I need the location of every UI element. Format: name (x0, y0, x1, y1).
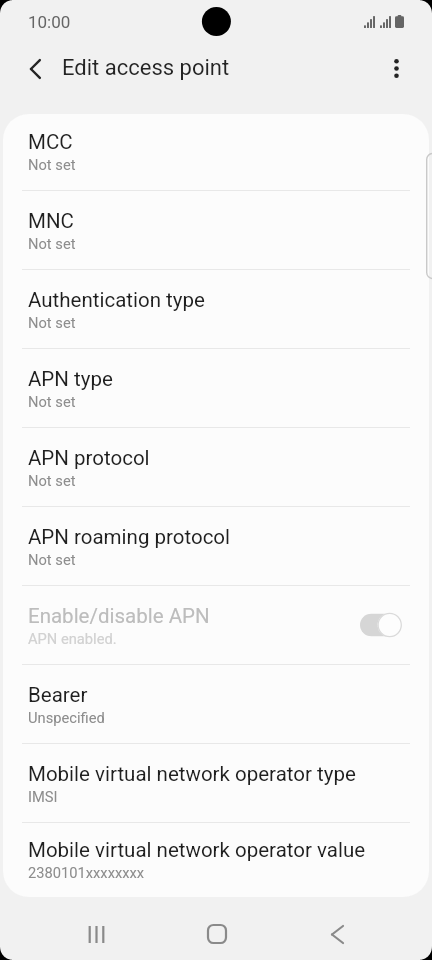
button[interactable]: Mobile virtual network operator value (3, 823, 429, 895)
staticText: APN type (28, 367, 113, 391)
button[interactable]: More options (374, 46, 418, 90)
staticText: APN enabled. (28, 630, 117, 647)
staticText: MNC (28, 209, 74, 233)
button[interactable]: MCC (3, 114, 429, 190)
button[interactable]: Authentication type (3, 270, 429, 348)
staticText: 10:00 (28, 12, 71, 32)
staticText: MCC (28, 130, 73, 154)
staticText: Not set (28, 235, 76, 252)
button[interactable]: Back (309, 906, 365, 960)
button[interactable]: MNC (3, 191, 429, 269)
button[interactable]: APN type (3, 349, 429, 427)
button[interactable]: Bearer (3, 665, 429, 743)
staticText: Bearer (28, 683, 88, 707)
staticText: Enable/disable APN (28, 604, 210, 628)
staticText: APN roaming protocol (28, 525, 231, 549)
staticText: Mobile virtual network operator type (28, 762, 356, 786)
button[interactable]: Mobile virtual network operator type (3, 744, 429, 822)
staticText: Not set (28, 156, 76, 173)
staticText: IMSI (28, 788, 58, 805)
staticText: 2380101xxxxxxxx (28, 864, 145, 881)
staticText: Not set (28, 314, 76, 331)
button[interactable]: APN protocol (3, 428, 429, 506)
button[interactable]: Navigate up (14, 47, 58, 91)
staticText: Edit access point (62, 55, 230, 81)
staticText: Unspecified (28, 709, 105, 726)
staticText: Mobile virtual network operator value (28, 838, 366, 862)
staticText: APN protocol (28, 446, 150, 470)
button[interactable]: Home (189, 906, 245, 960)
staticText: Not set (28, 472, 76, 489)
button[interactable]: Recent apps (68, 906, 124, 960)
staticText: Not set (28, 393, 76, 410)
staticText: Authentication type (28, 288, 205, 312)
button[interactable]: Enable/disable APN (359, 612, 402, 638)
staticText: Not set (28, 551, 76, 568)
button[interactable]: APN roaming protocol (3, 507, 429, 585)
button[interactable]: Enable/disable APN (3, 586, 429, 664)
